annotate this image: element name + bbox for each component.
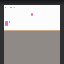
button[interactable] — [4, 6, 60, 8]
button[interactable]: Logo — [31, 13, 33, 16]
button[interactable] — [5, 21, 8, 26]
